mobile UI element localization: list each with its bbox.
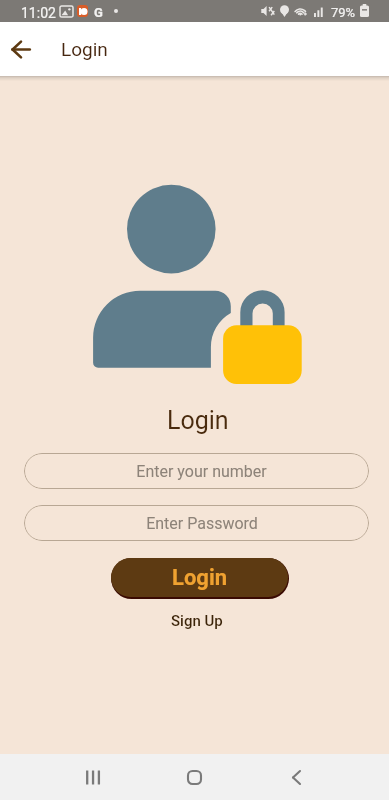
button[interactable]: Enter Password xyxy=(24,505,369,541)
button[interactable]: Back xyxy=(272,755,320,799)
staticText: Enter your number xyxy=(136,462,267,481)
button[interactable]: Sign Up xyxy=(171,612,223,630)
staticText: 11:02 xyxy=(21,5,56,21)
staticText: 79% xyxy=(331,5,356,20)
button[interactable]: Login xyxy=(111,558,288,597)
staticText: Sign Up xyxy=(171,612,223,630)
button[interactable]: Enter your number xyxy=(24,453,369,489)
button[interactable]: Recent apps xyxy=(69,755,117,799)
staticText: G xyxy=(94,5,103,20)
staticText: Login xyxy=(167,406,229,435)
staticText: Enter Password xyxy=(146,514,258,533)
button[interactable]: Back xyxy=(0,22,42,76)
staticText: Login xyxy=(61,38,108,60)
staticText: Login xyxy=(172,565,228,591)
button[interactable]: Home xyxy=(170,755,218,799)
